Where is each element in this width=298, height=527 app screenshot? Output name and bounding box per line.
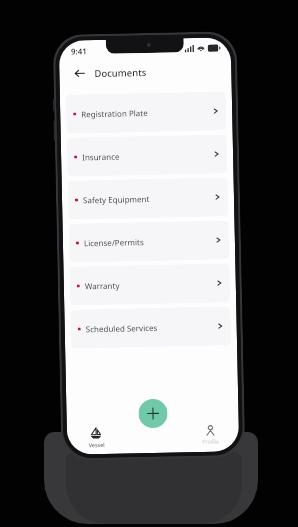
- staticText: Profile: [202, 438, 219, 445]
- staticText: Documents: [94, 66, 147, 80]
- button[interactable]: Scheduled Services: [70, 306, 231, 349]
- button[interactable]: Registration Plate: [66, 91, 227, 134]
- button[interactable]: Vessel: [67, 419, 125, 455]
- staticText: Scheduled Services: [86, 322, 158, 334]
- button[interactable]: Profile: [182, 417, 239, 452]
- button[interactable]: Insurance: [67, 134, 227, 177]
- staticText: Insurance: [82, 151, 120, 162]
- staticText: Vessel: [88, 441, 105, 448]
- staticText: License/Permits: [84, 236, 144, 248]
- button[interactable]: License/Permits: [68, 220, 229, 263]
- button[interactable]: Back: [71, 65, 87, 82]
- button[interactable]: Add: [138, 399, 168, 428]
- staticText: Safety Equipment: [83, 193, 150, 205]
- staticText: 9:41: [71, 45, 87, 57]
- button[interactable]: Safety Equipment: [68, 177, 228, 220]
- staticText: Warranty: [85, 280, 120, 291]
- button[interactable]: Warranty: [69, 263, 230, 306]
- staticText: Registration Plate: [81, 107, 148, 119]
